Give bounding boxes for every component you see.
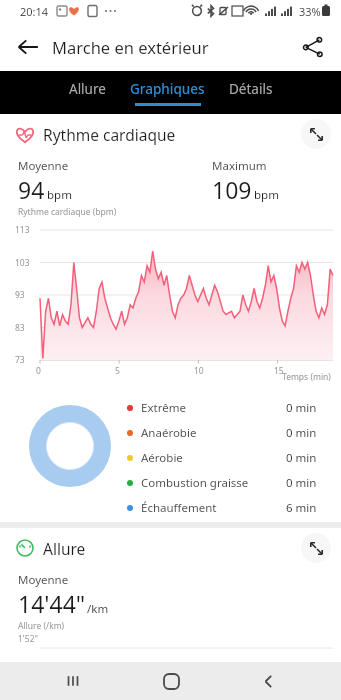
- staticText: Moyenne: [18, 572, 69, 588]
- staticText: Moyenne: [18, 158, 69, 174]
- button[interactable]: Allure: [66, 80, 109, 106]
- staticText: Rythme cardiaque: [43, 124, 176, 145]
- button[interactable]: Combustion graisse: [127, 472, 332, 494]
- staticText: bpm: [254, 187, 279, 203]
- staticText: Détails: [229, 80, 273, 98]
- staticText: 93: [15, 289, 25, 301]
- staticText: Extrême: [141, 400, 186, 416]
- staticText: 113: [15, 224, 30, 236]
- staticText: 83: [15, 322, 25, 334]
- staticText: Allure: [69, 80, 106, 98]
- staticText: Aérobie: [141, 450, 183, 466]
- button[interactable]: Extrême: [127, 397, 332, 419]
- staticText: Combustion graisse: [141, 475, 249, 491]
- staticText: Allure: [43, 538, 86, 559]
- staticText: Échauffement: [141, 500, 217, 516]
- button[interactable]: Partager: [293, 27, 333, 67]
- button[interactable]: Anaérobie: [127, 422, 332, 444]
- staticText: Allure (/km): [18, 620, 65, 632]
- staticText: 94: [18, 174, 45, 205]
- button[interactable]: Retour: [8, 27, 48, 67]
- button[interactable]: Agrandir: [301, 119, 331, 149]
- staticText: 5: [115, 365, 120, 377]
- staticText: 10: [194, 365, 204, 377]
- staticText: 6 min: [286, 500, 317, 516]
- staticText: 109: [212, 174, 252, 205]
- staticText: 0 min: [286, 475, 317, 491]
- staticText: 20:14: [20, 4, 49, 19]
- staticText: 103: [15, 257, 30, 269]
- staticText: 33%: [299, 4, 321, 19]
- staticText: 73: [15, 354, 25, 366]
- staticText: Marche en extérieur: [52, 36, 209, 58]
- button[interactable]: Accueil: [147, 662, 195, 700]
- staticText: 0 min: [286, 425, 317, 441]
- staticText: 14'44": [18, 588, 86, 619]
- button[interactable]: Agrandir: [301, 533, 331, 563]
- staticText: Rythme cardiaque (bpm): [18, 206, 117, 218]
- staticText: bpm: [47, 187, 72, 203]
- staticText: 0: [36, 365, 41, 377]
- staticText: 15: [274, 365, 284, 377]
- staticText: 1'52": [18, 633, 38, 645]
- button[interactable]: Graphiques: [127, 80, 208, 106]
- staticText: Anaérobie: [141, 425, 197, 441]
- staticText: /km: [87, 601, 109, 617]
- button[interactable]: Retour: [244, 662, 292, 700]
- staticText: 0 min: [286, 450, 317, 466]
- button[interactable]: Récents: [49, 662, 97, 700]
- staticText: Temps (min): [282, 371, 331, 383]
- button[interactable]: Aérobie: [127, 447, 332, 469]
- staticText: Maximum: [212, 158, 267, 174]
- button[interactable]: Échauffement: [127, 497, 332, 519]
- button[interactable]: Détails: [226, 80, 276, 106]
- staticText: 0 min: [286, 400, 317, 416]
- staticText: Graphiques: [130, 80, 205, 98]
